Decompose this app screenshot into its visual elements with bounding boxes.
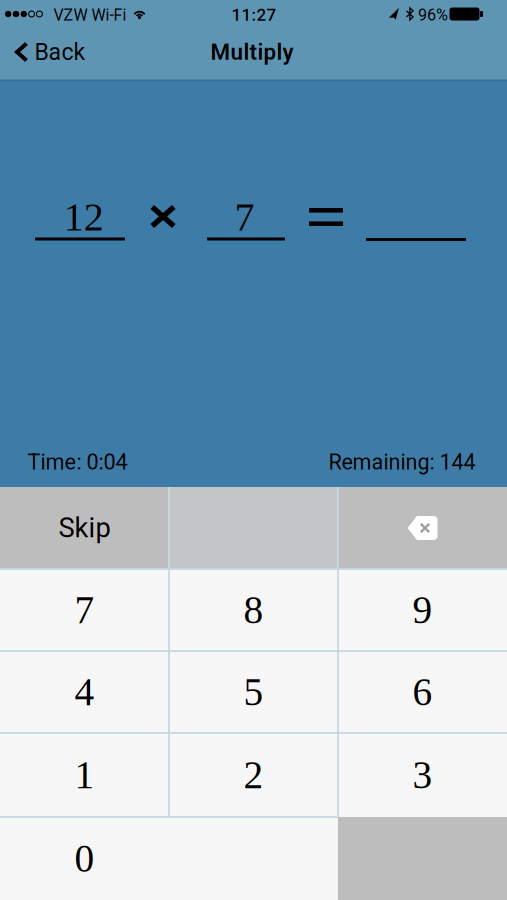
button[interactable]: 2 — [169, 733, 338, 817]
staticText: 7 — [74, 588, 94, 632]
button[interactable]: Skip — [0, 487, 169, 569]
staticText: Multiply — [210, 39, 293, 65]
button[interactable]: 3 — [338, 733, 507, 817]
staticText: 1 — [74, 753, 94, 797]
staticText: 96% — [418, 5, 448, 25]
staticText: 0 — [74, 837, 94, 880]
staticText: 4 — [74, 670, 94, 714]
button[interactable]: 1 — [0, 733, 169, 817]
staticText: VZW Wi-Fi — [53, 6, 126, 24]
staticText: 2 — [243, 753, 263, 797]
staticText: Time: 0:04 — [27, 449, 127, 475]
button[interactable]: 8 — [169, 569, 338, 651]
staticText: 3 — [412, 753, 432, 797]
staticText: Back — [34, 38, 85, 65]
staticText: 12 — [64, 195, 104, 239]
button[interactable]: 5 — [169, 651, 338, 733]
button[interactable]: 9 — [338, 569, 507, 651]
staticText: 6 — [412, 670, 432, 714]
button[interactable]: 4 — [0, 651, 169, 733]
staticText: 11:27 — [231, 5, 276, 25]
staticText: 8 — [243, 588, 263, 632]
button[interactable]: Back — [14, 31, 85, 73]
staticText: 5 — [243, 670, 263, 714]
button[interactable]: 0 — [0, 817, 338, 900]
button[interactable]: Delete — [338, 487, 507, 569]
staticText: Remaining: 144 — [328, 449, 475, 475]
button[interactable]: 6 — [338, 651, 507, 733]
staticText: 9 — [412, 588, 432, 632]
staticText: 7 — [234, 195, 254, 239]
button[interactable]: 7 — [0, 569, 169, 651]
staticText: Skip — [58, 512, 110, 544]
